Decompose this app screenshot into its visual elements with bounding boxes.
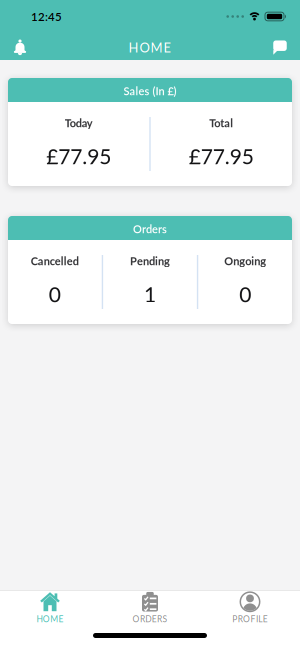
staticText: Sales (In £) — [123, 84, 176, 98]
button[interactable]: PROFILE — [200, 591, 300, 624]
button[interactable]: Messages — [272, 39, 300, 55]
staticText: £77.95 — [46, 144, 111, 169]
staticText: Ongoing — [224, 254, 266, 268]
button[interactable]: ORDERS — [100, 591, 200, 624]
staticText: Cancelled — [31, 254, 79, 268]
staticText: HOME — [128, 40, 171, 55]
button[interactable]: HOME — [0, 591, 100, 624]
staticText: Total — [209, 116, 233, 130]
staticText: ORDERS — [132, 614, 167, 624]
staticText: Pending — [130, 254, 170, 268]
staticText: PROFILE — [232, 614, 268, 624]
staticText: 0 — [49, 282, 61, 307]
staticText: £77.95 — [189, 144, 254, 169]
staticText: 12:45 — [31, 10, 62, 23]
staticText: Orders — [133, 222, 167, 236]
staticText: 0 — [239, 282, 251, 307]
staticText: Today — [65, 116, 93, 130]
staticText: 1 — [144, 282, 156, 307]
staticText: HOME — [36, 614, 64, 624]
button[interactable]: Notifications — [0, 39, 28, 55]
